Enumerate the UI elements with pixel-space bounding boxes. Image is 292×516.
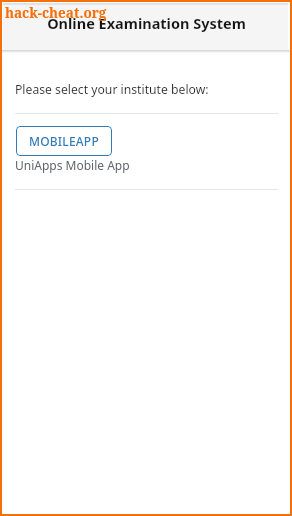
staticText: UniApps Mobile App <box>15 157 130 173</box>
staticText: Online Examination System <box>4 13 289 33</box>
staticText: hack-cheat.org <box>5 4 107 22</box>
button[interactable]: MOBILEAPP <box>16 126 112 156</box>
staticText: Please select your institute below: <box>15 81 209 98</box>
staticText: MOBILEAPP <box>29 133 99 149</box>
